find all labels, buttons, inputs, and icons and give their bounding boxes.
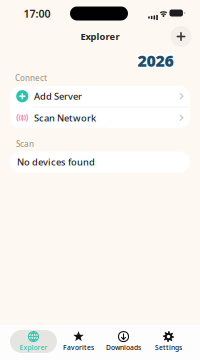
button[interactable]: Downloads: [100, 330, 147, 353]
staticText: Settings: [155, 343, 182, 352]
staticText: 2026: [139, 50, 175, 71]
staticText: 2026: [139, 49, 175, 70]
staticText: Scan: [16, 139, 34, 149]
staticText: Explorer: [19, 343, 47, 352]
button[interactable]: Explorer: [10, 330, 57, 353]
staticText: 2026: [136, 49, 172, 70]
staticText: Add Server: [34, 90, 82, 102]
button[interactable]: Scan Network: [16, 107, 184, 128]
staticText: 2026: [136, 51, 172, 72]
staticText: 2026: [137, 48, 173, 69]
staticText: 2026: [136, 50, 172, 71]
staticText: Explorer: [80, 30, 119, 43]
staticText: Connect: [15, 73, 47, 83]
staticText: 17:00: [23, 6, 50, 21]
button[interactable]: Favorites: [55, 330, 102, 353]
staticText: Downloads: [106, 343, 141, 352]
button[interactable]: Settings: [145, 330, 192, 353]
button[interactable]: Add server: [169, 24, 193, 48]
staticText: No devices found: [17, 156, 95, 168]
staticText: 2026: [137, 51, 173, 73]
button[interactable]: Add Server: [16, 86, 184, 107]
staticText: Favorites: [63, 343, 94, 352]
staticText: Scan Network: [34, 112, 96, 124]
staticText: 2026: [139, 51, 175, 72]
staticText: 2026: [137, 50, 173, 71]
